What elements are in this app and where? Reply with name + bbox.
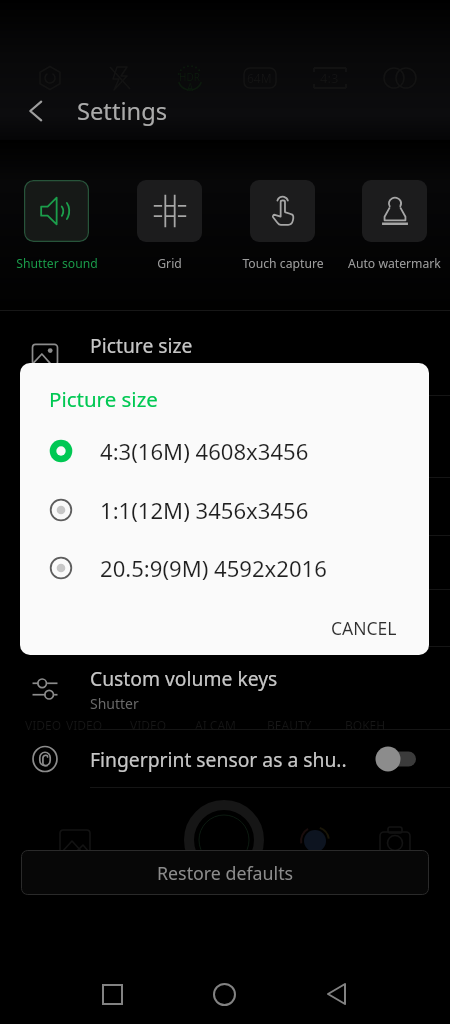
button[interactable]: Picture size xyxy=(0,315,450,396)
staticText: Picture size xyxy=(49,385,158,413)
staticText: 1:1(12M) 3456x3456 xyxy=(100,495,309,525)
staticText: HDR xyxy=(179,70,200,84)
staticText: Video quality xyxy=(90,494,208,520)
button[interactable]: 20.5:9(9M) 4592x2016 xyxy=(20,539,429,597)
button[interactable]: Home xyxy=(186,963,263,1024)
button[interactable]: Touch capture xyxy=(226,180,339,272)
staticText: AI CAM xyxy=(195,717,236,733)
staticText: Touch capture xyxy=(242,255,324,272)
button[interactable]: CANCEL xyxy=(314,607,414,649)
staticText: A xyxy=(187,80,194,94)
staticText: Shutter xyxy=(90,694,139,713)
button[interactable]: 4:3(16M) 4608x3456 xyxy=(20,422,429,480)
staticText: Picture size xyxy=(90,332,193,358)
button[interactable]: Fingerprint sensor as a shu.. xyxy=(0,730,450,788)
button[interactable]: Location xyxy=(0,590,450,647)
staticText: VIDEO xyxy=(25,717,62,733)
button[interactable]: Restore defaults xyxy=(21,850,429,895)
button[interactable]: Custom volume keys xyxy=(0,647,450,730)
button[interactable]: Recent apps xyxy=(74,963,151,1024)
button[interactable]: Auto watermark xyxy=(339,180,450,272)
staticText: 4:3(16M) 4608x3456 xyxy=(90,361,222,380)
staticText: Auto watermark xyxy=(348,255,441,272)
staticText: Custom volume keys xyxy=(90,665,278,691)
button[interactable]: 1:1(12M) 3456x3456 xyxy=(20,481,429,539)
staticText: Shutter sound xyxy=(16,255,98,272)
staticText: VIDEO xyxy=(130,717,167,733)
button[interactable]: Video size xyxy=(0,396,450,478)
button[interactable]: Timer xyxy=(0,536,450,590)
staticText: BEAUTY xyxy=(267,717,312,733)
staticText: Settings xyxy=(77,95,168,127)
staticText: Grid xyxy=(157,255,182,272)
staticText: VIDEO xyxy=(66,717,103,733)
button[interactable]: Grid xyxy=(113,180,226,272)
button[interactable]: Video quality xyxy=(0,478,450,536)
staticText: Restore defaults xyxy=(157,861,294,885)
staticText: FHD 1080P xyxy=(90,442,163,461)
staticText: Timer xyxy=(90,550,143,576)
staticText: 20.5:9(9M) 4592x2016 xyxy=(100,553,327,583)
button[interactable]: Fingerprint shutter toggle xyxy=(368,736,428,782)
staticText: Fingerprint sensor as a shu.. xyxy=(90,746,347,772)
button[interactable]: Back xyxy=(298,963,375,1024)
staticText: CANCEL xyxy=(331,616,397,640)
staticText: 4:3(16M) 4608x3456 xyxy=(100,436,309,466)
staticText: BOKEH xyxy=(345,717,386,733)
button[interactable]: Back xyxy=(13,88,59,134)
button[interactable]: Shutter sound xyxy=(0,180,113,272)
